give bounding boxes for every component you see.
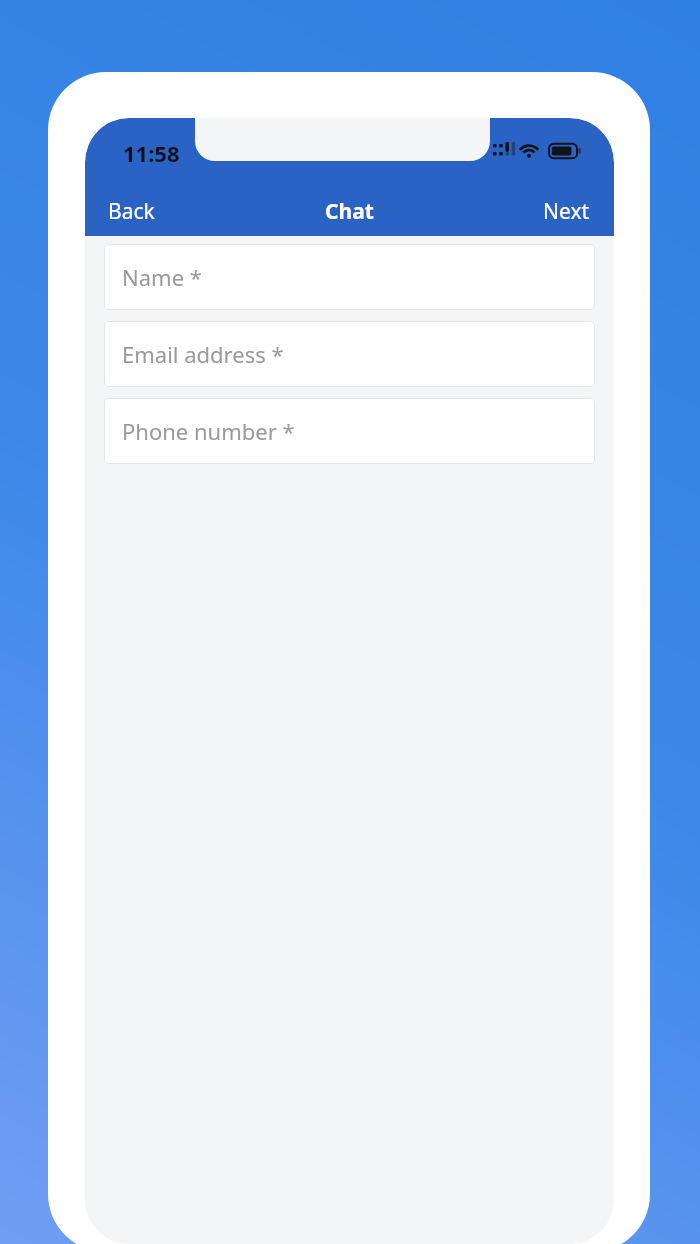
button[interactable]: Email address * xyxy=(104,321,595,387)
button[interactable]: Next xyxy=(529,188,604,235)
button[interactable]: Name * xyxy=(104,244,595,310)
button[interactable]: Chat xyxy=(317,189,382,234)
staticText: Phone number * xyxy=(122,416,295,446)
staticText: Email address * xyxy=(122,339,284,369)
button[interactable]: Back xyxy=(94,188,169,235)
button[interactable]: Phone number * xyxy=(104,398,595,464)
staticText: Back xyxy=(108,197,155,226)
staticText: Chat xyxy=(325,197,374,226)
staticText: Name * xyxy=(122,262,202,292)
other: Status icons xyxy=(489,133,601,169)
staticText: Next xyxy=(543,197,590,226)
staticText: 11:58 xyxy=(123,138,180,168)
